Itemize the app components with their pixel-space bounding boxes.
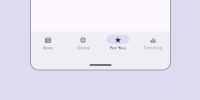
button[interactable]: News [30,35,65,51]
button[interactable]: Global [65,35,100,51]
staticText: News [43,45,53,50]
staticText: Trending [143,45,162,50]
staticText: For You [110,45,126,50]
staticText: Global [76,45,89,50]
button[interactable]: Trending [135,35,170,51]
button[interactable]: For You [100,35,135,51]
